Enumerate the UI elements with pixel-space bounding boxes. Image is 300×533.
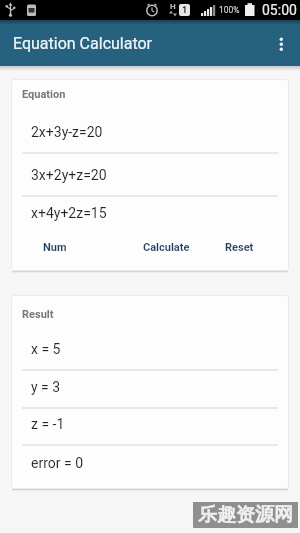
staticText: Result: [22, 308, 54, 321]
staticText: x = 5: [31, 341, 61, 357]
staticText: 05:00: [262, 2, 297, 18]
button[interactable]: Num: [31, 233, 79, 261]
staticText: x+4y+2z=15: [31, 205, 107, 221]
staticText: 100%: [219, 5, 240, 15]
staticText: Equation: [22, 88, 66, 101]
staticText: error = 0: [31, 455, 84, 471]
button[interactable]: x+4y+2z=15: [31, 203, 271, 223]
staticText: z = -1: [31, 416, 65, 432]
button[interactable]: 2x+3y-z=20: [31, 122, 271, 142]
staticText: 乐趣资源网: [198, 503, 293, 527]
button[interactable]: Calculate: [130, 233, 202, 261]
button[interactable]: Reset: [215, 233, 263, 261]
button[interactable]: [266, 27, 298, 59]
staticText: Num: [43, 241, 67, 254]
staticText: Equation Calculator: [13, 34, 153, 53]
staticText: 2x+3y-z=20: [31, 124, 103, 140]
staticText: 3x+2y+z=20: [31, 167, 107, 183]
staticText: Calculate: [143, 241, 190, 254]
button[interactable]: 3x+2y+z=20: [31, 165, 271, 185]
staticText: y = 3: [31, 379, 61, 395]
staticText: H: [170, 2, 176, 11]
staticText: Reset: [225, 241, 254, 254]
staticText: 1: [182, 5, 188, 16]
